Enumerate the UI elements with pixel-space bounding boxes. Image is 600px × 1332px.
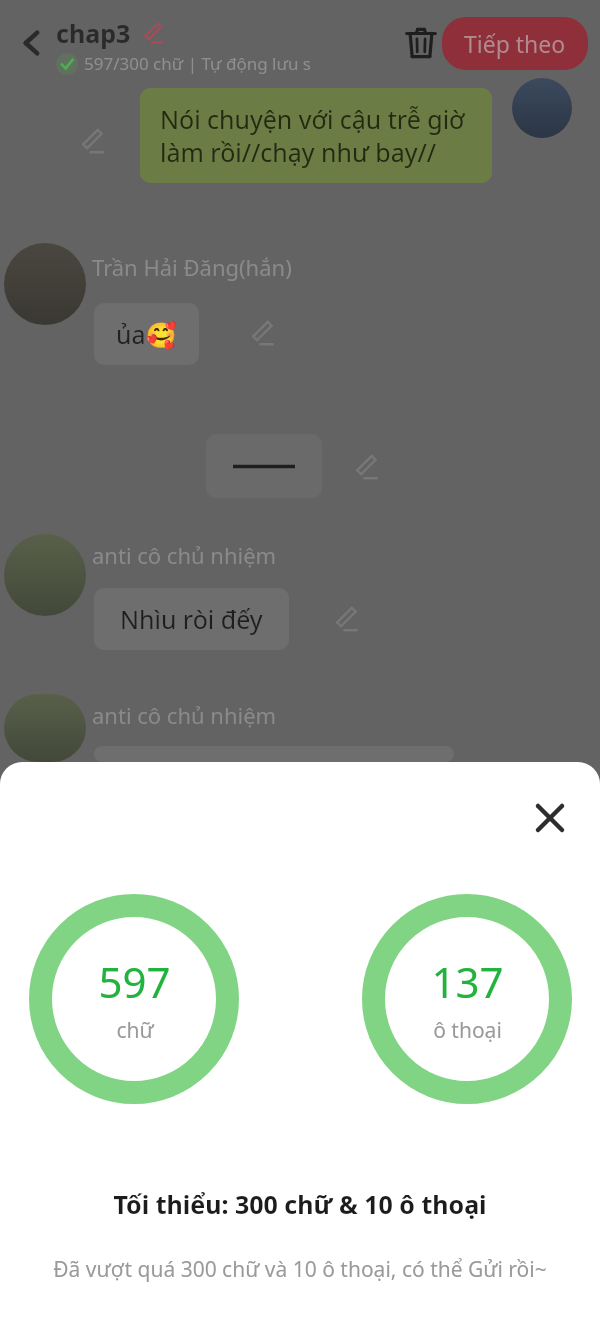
button[interactable]: Tiếp theo — [442, 17, 588, 70]
button[interactable]: Close — [522, 790, 578, 846]
button[interactable] — [206, 434, 322, 498]
staticText: Trần Hải Đăng(hắn) — [92, 252, 292, 282]
staticText: anti cô chủ nhiệm — [92, 700, 277, 730]
button[interactable] — [4, 243, 86, 325]
button[interactable]: 137 — [362, 894, 572, 1104]
button[interactable]: Edit title — [137, 18, 167, 48]
button[interactable]: Edit message — [244, 316, 278, 350]
staticText: 597/300 chữ | Tự động lưu s — [84, 52, 311, 75]
button[interactable]: 597 — [29, 894, 239, 1104]
staticText: 137 — [431, 953, 504, 1010]
button[interactable]: Nói chuyện với cậu trễ giờ làm rồi//chạy… — [140, 88, 492, 183]
staticText: anti cô chủ nhiệm — [92, 540, 277, 570]
button[interactable]: Nhìu ròi đếy — [94, 588, 289, 650]
staticText: Tiếp theo — [464, 28, 566, 59]
staticText: Tối thiểu: 300 chữ & 10 ô thoại — [113, 1187, 487, 1221]
staticText: chap3 — [56, 16, 131, 50]
button[interactable] — [4, 534, 86, 616]
button[interactable]: Edit message — [74, 124, 108, 158]
button[interactable]: Delete — [394, 16, 448, 70]
button[interactable]: Edit message — [328, 602, 362, 636]
staticText: 597 — [98, 953, 171, 1010]
button[interactable]: Edit message — [348, 450, 382, 484]
staticText: chữ — [116, 1016, 154, 1045]
button[interactable]: ủa🥰 — [94, 303, 199, 365]
staticText: Nhìu ròi đếy — [120, 602, 263, 636]
staticText: ô thoại — [433, 1016, 502, 1045]
staticText: Nói chuyện với cậu trễ giờ làm rồi//chạy… — [160, 102, 472, 169]
button[interactable]: Back — [6, 17, 58, 69]
staticText: ủa🥰 — [116, 317, 177, 351]
staticText: Đã vượt quá 300 chữ và 10 ô thoại, có th… — [53, 1255, 547, 1284]
